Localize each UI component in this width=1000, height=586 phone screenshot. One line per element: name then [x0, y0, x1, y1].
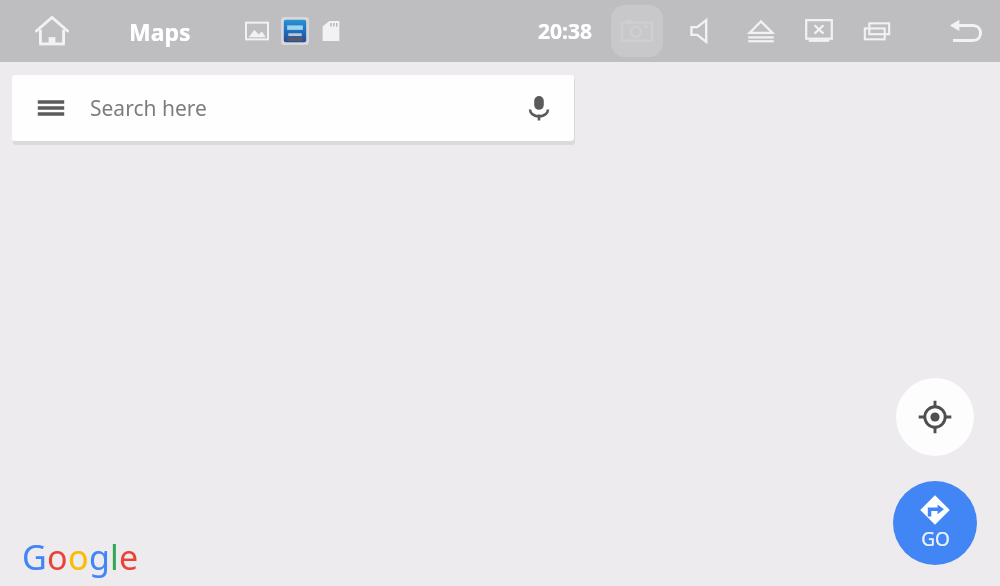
button[interactable]: Eject — [732, 0, 790, 62]
button[interactable]: Recent apps — [848, 0, 906, 62]
staticText: l — [110, 534, 119, 580]
button[interactable]: Back — [930, 0, 1000, 62]
staticText: G — [22, 534, 47, 580]
staticText: e — [119, 534, 139, 580]
button[interactable]: Start navigation — [893, 481, 977, 565]
staticText: Search here — [90, 94, 207, 123]
button[interactable]: Voice search — [504, 75, 574, 141]
staticText: g — [89, 534, 110, 580]
staticText: o — [47, 534, 68, 580]
button[interactable]: iGO navigation — [280, 16, 310, 46]
staticText: o — [68, 534, 89, 580]
button[interactable]: Home — [0, 0, 104, 62]
staticText: Maps — [129, 16, 191, 47]
button[interactable]: Screenshot — [244, 18, 270, 44]
button[interactable]: 20:38 — [538, 17, 592, 46]
button[interactable]: Open menu — [12, 75, 574, 141]
button[interactable]: Mute volume — [674, 0, 732, 62]
button[interactable]: Open menu — [12, 75, 90, 141]
button[interactable]: Camera — [606, 0, 668, 62]
button[interactable]: My location — [896, 378, 974, 456]
button[interactable]: Screen off — [790, 0, 848, 62]
staticText: GO — [921, 526, 950, 552]
button[interactable]: SD card — [318, 18, 344, 44]
